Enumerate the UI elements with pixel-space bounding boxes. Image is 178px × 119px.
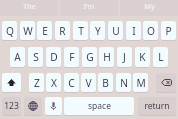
staticText: C — [68, 76, 75, 90]
button[interactable]: D — [46, 47, 61, 67]
staticText: V — [85, 76, 92, 90]
button[interactable]: S — [28, 47, 43, 67]
button[interactable]: K — [135, 47, 150, 67]
button[interactable]: L — [153, 47, 168, 67]
staticText: X — [51, 76, 57, 90]
staticText: O — [147, 24, 155, 38]
staticText: I'm — [83, 1, 95, 11]
staticText: E — [42, 24, 48, 38]
button[interactable]: I — [126, 21, 141, 40]
button[interactable]: Shift — [2, 73, 21, 92]
button[interactable]: N — [116, 73, 131, 92]
button[interactable]: return — [138, 97, 176, 115]
button[interactable]: E — [37, 21, 52, 40]
staticText: S — [33, 50, 39, 64]
button[interactable]: My — [120, 0, 178, 16]
staticText: Z — [34, 76, 40, 90]
staticText: P — [165, 24, 172, 38]
staticText: My — [144, 1, 155, 11]
staticText: H — [103, 50, 111, 64]
button[interactable]: Z — [29, 73, 44, 92]
staticText: F — [69, 50, 75, 64]
button[interactable]: Backspace — [156, 73, 176, 92]
staticText: Q — [6, 24, 14, 38]
button[interactable]: R — [55, 21, 70, 40]
button[interactable]: X — [46, 73, 61, 92]
staticText: N — [120, 76, 128, 90]
staticText: W — [23, 24, 33, 38]
button[interactable]: H — [99, 47, 114, 67]
staticText: M — [136, 76, 146, 90]
button[interactable]: Q — [2, 21, 17, 40]
button[interactable]: U — [108, 21, 123, 40]
button[interactable]: T — [73, 21, 88, 40]
staticText: A — [14, 50, 21, 64]
staticText: Y — [95, 24, 101, 38]
staticText: B — [102, 76, 109, 90]
button[interactable]: Dictation — [45, 97, 62, 115]
button[interactable]: F — [64, 47, 79, 67]
button[interactable]: B — [98, 73, 113, 92]
staticText: J — [123, 50, 126, 64]
staticText: I — [132, 24, 136, 38]
button[interactable]: P — [161, 21, 176, 40]
staticText: 123 — [4, 100, 19, 112]
staticText: D — [50, 50, 58, 64]
button[interactable]: I'm — [60, 0, 118, 16]
staticText: R — [59, 24, 66, 38]
button[interactable]: 123 — [2, 97, 21, 115]
staticText: return — [144, 100, 170, 112]
button[interactable]: C — [64, 73, 79, 92]
button[interactable]: W — [20, 21, 35, 40]
button[interactable]: M — [133, 73, 148, 92]
staticText: K — [139, 50, 146, 64]
staticText: The — [23, 1, 36, 11]
button[interactable]: J — [117, 47, 132, 67]
button[interactable]: Next keyboard — [24, 97, 42, 115]
button[interactable]: O — [143, 21, 158, 40]
button[interactable]: space — [64, 97, 134, 115]
button[interactable]: A — [10, 47, 25, 67]
button[interactable]: V — [81, 73, 96, 92]
button[interactable]: Y — [90, 21, 105, 40]
staticText: T — [78, 24, 84, 38]
staticText: U — [112, 24, 120, 38]
staticText: G — [86, 50, 94, 64]
staticText: L — [158, 50, 164, 64]
button[interactable]: G — [82, 47, 97, 67]
button[interactable]: The — [0, 0, 58, 16]
staticText: space — [88, 100, 111, 112]
